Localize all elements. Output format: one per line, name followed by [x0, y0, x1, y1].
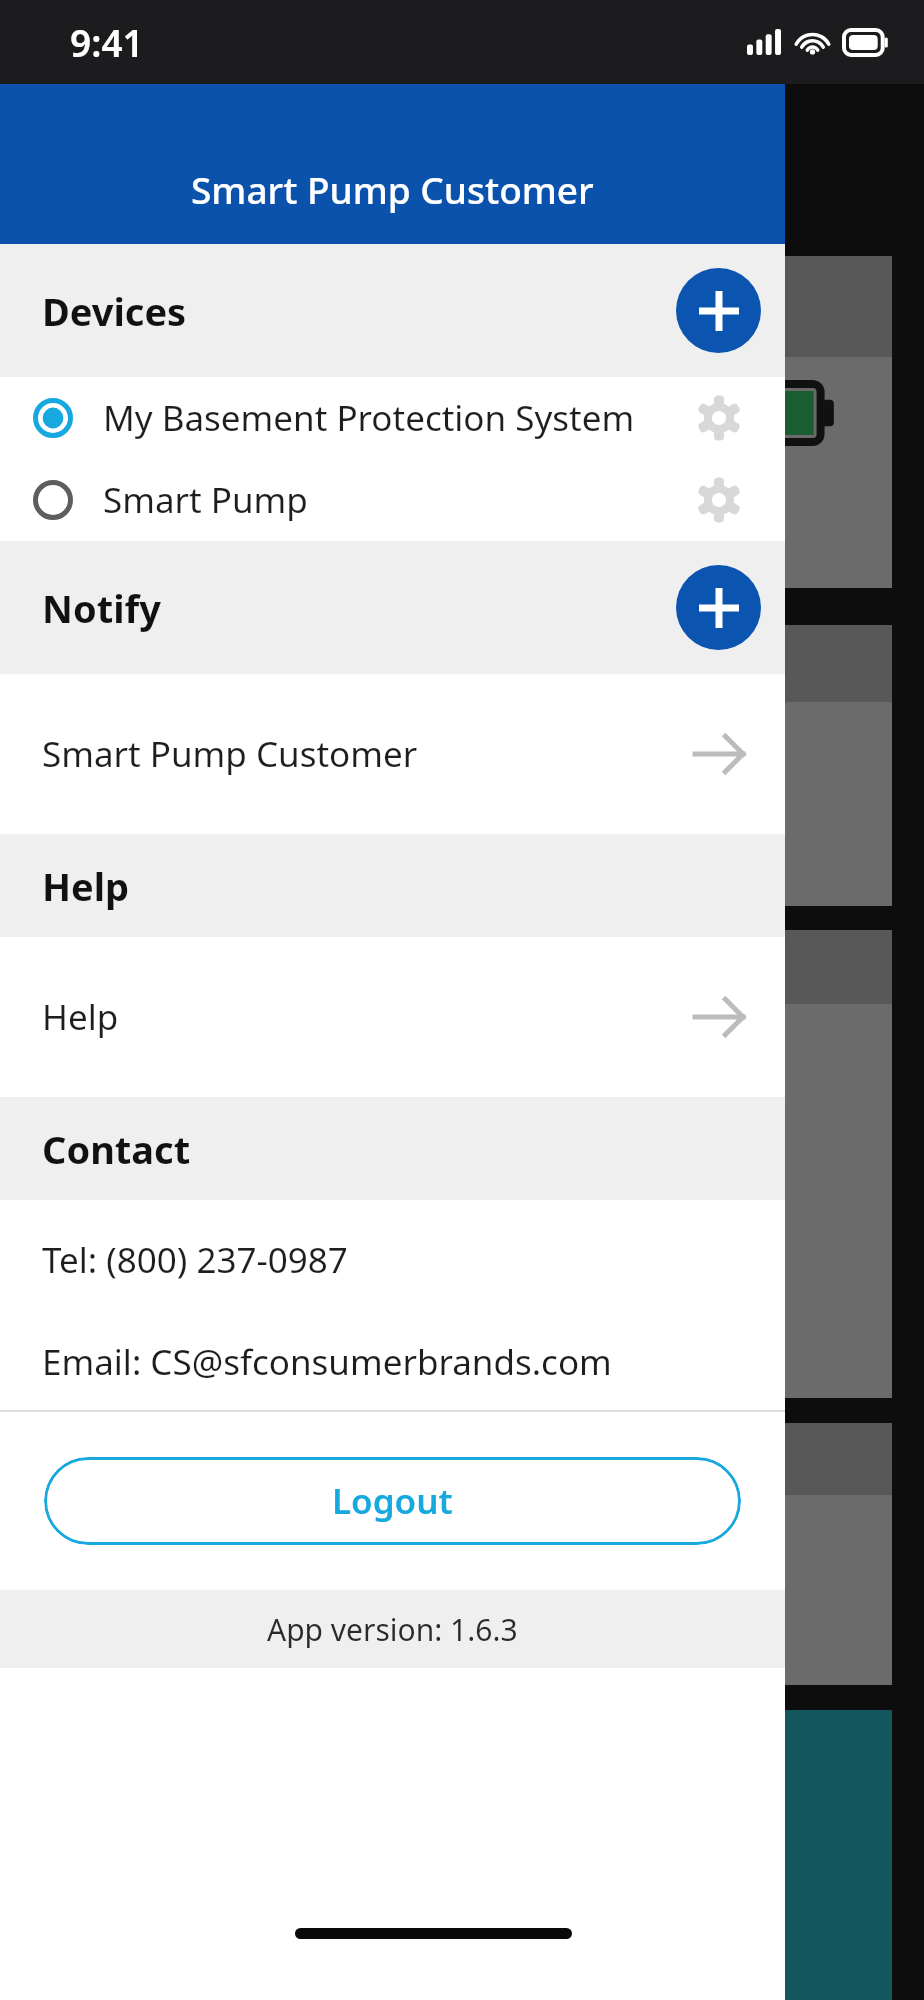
button[interactable]: Logout: [44, 1457, 741, 1545]
staticText: Logout: [332, 1477, 453, 1525]
button[interactable]: Settings for Smart Pump: [691, 472, 747, 528]
staticText: Help: [42, 860, 130, 912]
button[interactable]: Help: [0, 937, 785, 1097]
staticText: Email: CS@sfconsumerbrands.com: [42, 1338, 612, 1386]
staticText: Contact: [42, 1123, 191, 1175]
staticText: Smart Pump Customer: [191, 164, 594, 214]
staticText: Smart Pump Customer: [42, 730, 418, 778]
staticText: Notify: [42, 582, 161, 634]
staticText: Devices: [42, 285, 187, 337]
button[interactable]: Smart Pump: [0, 459, 785, 541]
staticText: 9:41: [70, 17, 144, 67]
staticText: App version: 1.6.3: [267, 1609, 518, 1650]
staticText: Smart Pump: [103, 476, 308, 524]
button[interactable]: Add device: [676, 268, 761, 353]
button[interactable]: My Basement Protection System: [0, 377, 785, 459]
button[interactable]: Smart Pump Customer: [0, 674, 785, 834]
button[interactable]: Settings for My Basement Protection Syst…: [691, 390, 747, 446]
staticText: My Basement Protection System: [103, 394, 635, 442]
staticText: Tel: (800) 237-0987: [42, 1236, 348, 1284]
staticText: Help: [42, 993, 119, 1041]
button[interactable]: Add notification: [676, 565, 761, 650]
